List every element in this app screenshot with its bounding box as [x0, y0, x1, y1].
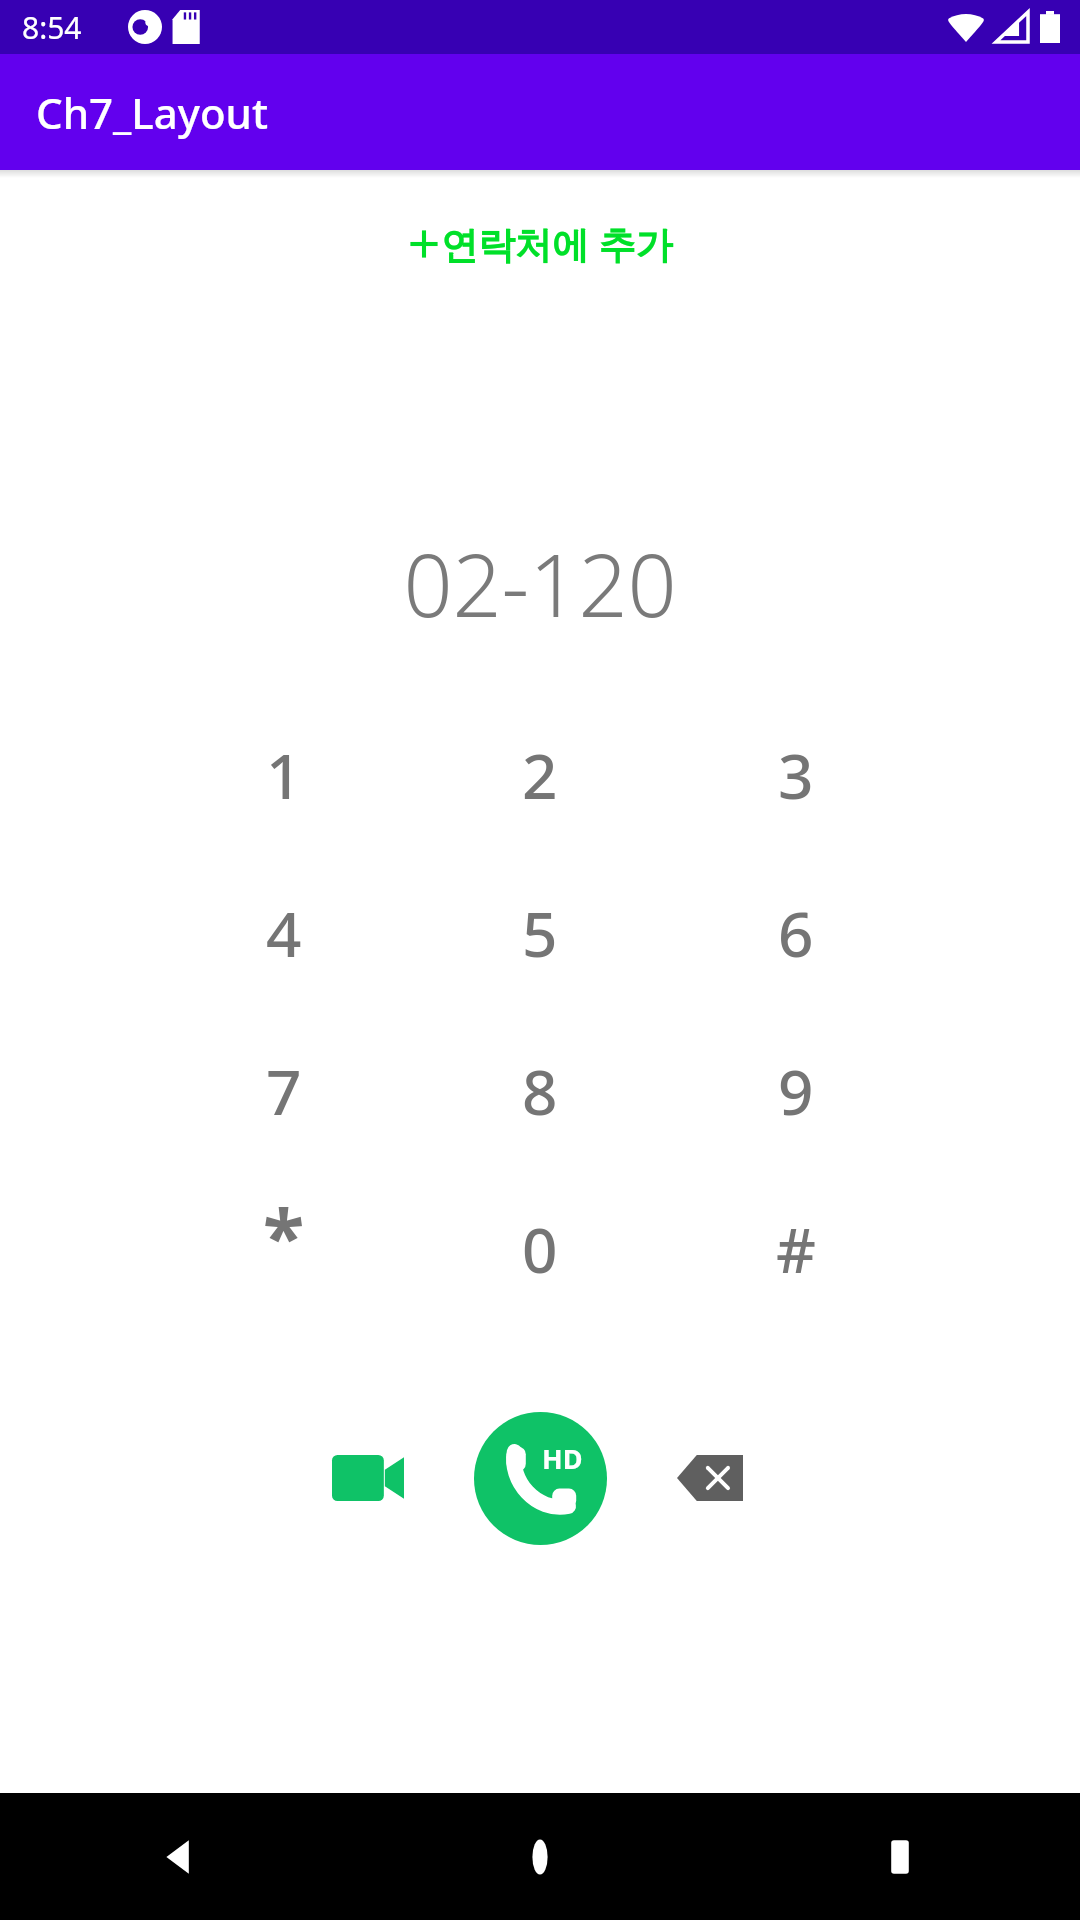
staticText: 6: [778, 891, 814, 975]
button[interactable]: 1: [156, 696, 412, 854]
button[interactable]: #: [668, 1170, 924, 1328]
button[interactable]: Home: [360, 1793, 720, 1920]
button[interactable]: 3: [668, 696, 924, 854]
button[interactable]: *: [156, 1170, 412, 1328]
button[interactable]: 4: [156, 854, 412, 1012]
button[interactable]: 9: [668, 1012, 924, 1170]
button[interactable]: Video call: [313, 1423, 423, 1533]
staticText: 2: [522, 733, 558, 817]
staticText: 8: [522, 1049, 558, 1133]
button[interactable]: 5: [412, 854, 668, 1012]
button[interactable]: 7: [156, 1012, 412, 1170]
staticText: 3: [778, 733, 814, 817]
button[interactable]: Backspace: [655, 1423, 765, 1533]
staticText: 02-120: [403, 525, 677, 642]
staticText: 5: [522, 891, 558, 975]
button[interactable]: 0: [412, 1170, 668, 1328]
staticText: #: [776, 1207, 817, 1291]
button[interactable]: 6: [668, 854, 924, 1012]
staticText: 4: [266, 891, 302, 975]
staticText: 1: [266, 733, 302, 817]
staticText: 8:54: [22, 7, 82, 48]
button[interactable]: 8: [412, 1012, 668, 1170]
button[interactable]: Call: [474, 1412, 607, 1545]
button[interactable]: Back: [0, 1793, 360, 1920]
staticText: HD: [542, 1440, 583, 1477]
button[interactable]: 연락처에 추가: [395, 212, 685, 275]
staticText: 7: [266, 1049, 302, 1133]
button[interactable]: Recent apps: [720, 1793, 1080, 1920]
staticText: Ch7_Layout: [36, 84, 268, 141]
staticText: 연락처에 추가: [441, 218, 673, 269]
staticText: 0: [522, 1207, 558, 1291]
staticText: 9: [778, 1049, 814, 1133]
button[interactable]: 2: [412, 696, 668, 854]
staticText: *: [263, 1183, 305, 1287]
